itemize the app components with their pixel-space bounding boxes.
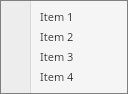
staticText: Item 3	[40, 49, 74, 64]
staticText: Item 4	[40, 69, 74, 84]
button[interactable]: Item 4	[31, 66, 127, 86]
staticText: Item 2	[40, 29, 74, 44]
button[interactable]: Item 2	[31, 26, 127, 46]
button[interactable]: Item 1	[31, 6, 127, 26]
button[interactable]: Item 3	[31, 46, 127, 66]
staticText: Item 1	[40, 9, 74, 24]
